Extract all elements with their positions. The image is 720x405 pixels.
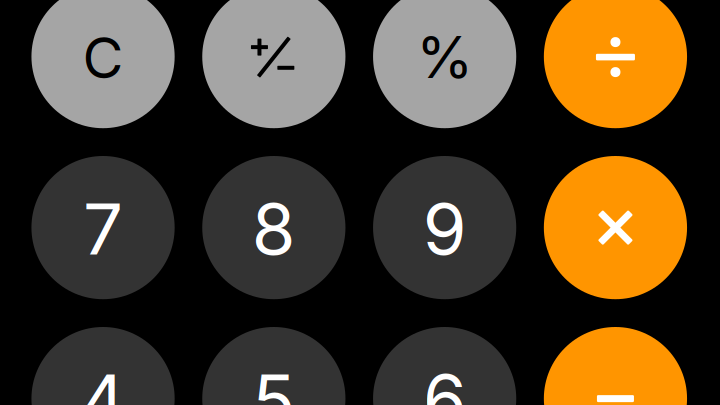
staticText: 4	[80, 357, 126, 405]
staticText: C	[82, 24, 123, 92]
staticText: 9	[423, 186, 467, 271]
button[interactable]: 8	[202, 156, 345, 299]
button[interactable]: 5	[202, 327, 345, 405]
button[interactable]: C	[31, 0, 175, 128]
button[interactable]: %	[373, 0, 516, 128]
staticText: 6	[423, 357, 467, 405]
button[interactable]: 4	[31, 327, 175, 405]
staticText: 5	[252, 357, 295, 405]
staticText: %	[416, 22, 473, 92]
button[interactable]: Toggle sign	[202, 0, 345, 128]
staticText: 7	[83, 186, 123, 271]
button[interactable]: Multiply	[544, 156, 687, 299]
button[interactable]: 7	[31, 156, 175, 299]
button[interactable]: 6	[373, 327, 516, 405]
button[interactable]: Subtract	[544, 327, 687, 405]
button[interactable]: 9	[373, 156, 516, 299]
staticText: 8	[252, 186, 296, 271]
button[interactable]: Divide	[544, 0, 687, 128]
